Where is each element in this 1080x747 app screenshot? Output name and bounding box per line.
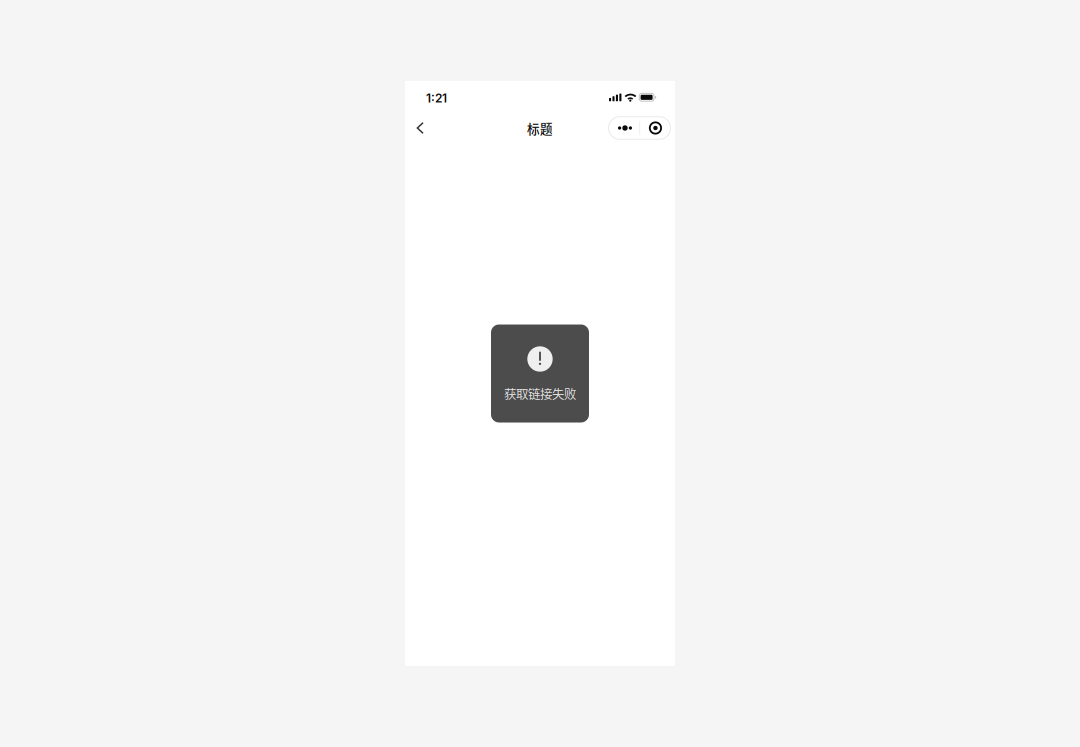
staticText: 标题 — [527, 119, 553, 137]
staticText: 1:21 — [426, 91, 447, 105]
button[interactable]: Close mini program — [640, 117, 670, 139]
staticText: 获取链接失败 — [504, 384, 576, 402]
button[interactable]: Back — [407, 115, 433, 141]
button[interactable]: More options — [608, 117, 639, 139]
